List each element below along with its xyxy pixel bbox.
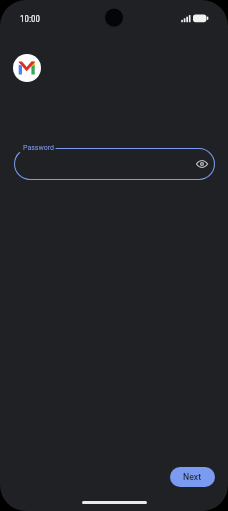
button[interactable]: Show password bbox=[192, 154, 212, 174]
staticText: 10:00 bbox=[20, 14, 40, 25]
staticText: Next bbox=[183, 472, 202, 482]
staticText: Password bbox=[23, 144, 54, 152]
button[interactable]: Next bbox=[170, 467, 215, 487]
